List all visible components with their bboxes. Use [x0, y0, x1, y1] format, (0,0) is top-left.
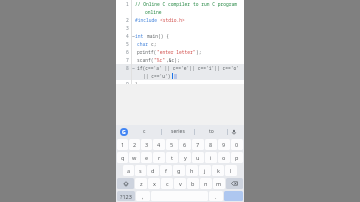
- staticText: ,: [142, 193, 144, 200]
- button[interactable]: c: [161, 178, 173, 189]
- button[interactable]: f: [160, 165, 172, 176]
- staticText: || c=='u'): [143, 73, 171, 79]
- button[interactable]: .: [209, 191, 223, 201]
- button[interactable]: 1: [117, 139, 128, 150]
- staticText: l: [230, 167, 232, 174]
- staticText: s: [139, 167, 142, 174]
- button[interactable]: 2: [116, 16, 244, 24]
- staticText: 2: [126, 17, 129, 23]
- staticText: 4: [126, 33, 129, 39]
- button[interactable]: 7: [116, 56, 244, 64]
- button[interactable]: 3: [116, 24, 244, 32]
- staticText: "%c": [154, 57, 166, 63]
- staticText: "enter letter": [157, 49, 196, 55]
- button[interactable]: s: [135, 165, 146, 176]
- button[interactable]: o: [218, 152, 230, 163]
- staticText: 6: [183, 141, 187, 148]
- button[interactable]: Voice input: [228, 125, 240, 138]
- staticText: j: [204, 167, 206, 174]
- button[interactable]: 3: [141, 139, 152, 150]
- staticText: a: [127, 167, 131, 174]
- button[interactable]: g: [173, 165, 185, 176]
- button[interactable]: 9: [116, 80, 244, 88]
- button[interactable]: 8: [205, 139, 217, 150]
- button[interactable]: Shift: [117, 178, 134, 189]
- staticText: c;: [151, 41, 157, 47]
- button[interactable]: k: [212, 165, 224, 176]
- button[interactable]: d: [147, 165, 159, 176]
- button[interactable]: Google search: [120, 128, 128, 136]
- button[interactable]: 7: [192, 139, 204, 150]
- staticText: f: [165, 167, 167, 174]
- button[interactable]: e: [141, 152, 152, 163]
- button[interactable]: r: [153, 152, 165, 163]
- staticText: g: [177, 167, 181, 174]
- staticText: 6: [126, 49, 129, 55]
- button[interactable]: b: [187, 178, 199, 189]
- staticText: k: [217, 167, 220, 174]
- button[interactable]: 1: [116, 0, 244, 8]
- staticText: to: [209, 128, 214, 135]
- button[interactable]: 5: [166, 139, 178, 150]
- staticText: 8: [126, 65, 129, 71]
- button[interactable]: 2: [129, 139, 140, 150]
- button[interactable]: 0: [231, 139, 243, 150]
- staticText: main() {: [147, 33, 170, 39]
- staticText: printf(: [137, 49, 157, 55]
- button[interactable]: 8: [116, 64, 244, 72]
- button[interactable]: v: [174, 178, 186, 189]
- button[interactable]: Backspace: [226, 178, 243, 189]
- staticText: 4: [157, 141, 161, 148]
- button[interactable]: || c=='u'): [116, 72, 244, 80]
- staticText: o: [222, 154, 226, 161]
- button[interactable]: c: [128, 125, 161, 138]
- button[interactable]: online: [116, 8, 244, 16]
- staticText: c: [166, 180, 169, 187]
- button[interactable]: 6: [179, 139, 191, 150]
- staticText: .: [215, 193, 217, 200]
- button[interactable]: 5: [116, 40, 244, 48]
- staticText: // Online C compiler to run C program: [135, 1, 237, 7]
- button[interactable]: y: [179, 152, 191, 163]
- staticText: w: [132, 154, 137, 161]
- button[interactable]: z: [135, 178, 147, 189]
- staticText: m: [216, 180, 222, 187]
- button[interactable]: ?123: [117, 191, 135, 201]
- staticText: 9: [126, 81, 129, 87]
- button[interactable]: 4: [153, 139, 165, 150]
- button[interactable]: Enter: [224, 191, 243, 201]
- button[interactable]: l: [225, 165, 237, 176]
- button[interactable]: u: [192, 152, 204, 163]
- staticText: y: [184, 154, 187, 161]
- button[interactable]: x: [148, 178, 160, 189]
- staticText: char: [137, 41, 151, 47]
- staticText: r: [158, 154, 161, 161]
- button[interactable]: w: [129, 152, 140, 163]
- button[interactable]: q: [117, 152, 128, 163]
- button[interactable]: p: [231, 152, 243, 163]
- button[interactable]: ,: [136, 191, 150, 201]
- staticText: 3: [145, 141, 149, 148]
- button[interactable]: to: [195, 125, 227, 138]
- staticText: u: [196, 154, 200, 161]
- button[interactable]: 6: [116, 48, 244, 56]
- button[interactable]: m: [213, 178, 225, 189]
- button[interactable]: h: [186, 165, 198, 176]
- staticText: );: [196, 49, 202, 55]
- button[interactable]: series: [162, 125, 194, 138]
- button[interactable]: t: [166, 152, 178, 163]
- button[interactable]: 9: [218, 139, 230, 150]
- staticText: p: [235, 154, 239, 161]
- button[interactable]: n: [200, 178, 212, 189]
- button[interactable]: i: [205, 152, 217, 163]
- button[interactable]: 4: [116, 32, 244, 40]
- button[interactable]: a: [123, 165, 134, 176]
- staticText: x: [153, 180, 156, 187]
- staticText: ,&c);: [166, 57, 180, 63]
- staticText: 0: [235, 141, 239, 148]
- staticText: h: [190, 167, 194, 174]
- staticText: }: [135, 81, 138, 87]
- button[interactable]: j: [199, 165, 211, 176]
- staticText: int: [135, 33, 147, 39]
